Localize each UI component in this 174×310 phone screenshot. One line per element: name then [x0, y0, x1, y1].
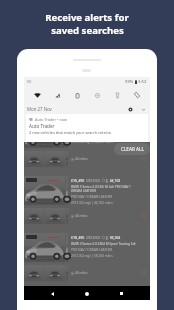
button[interactable]: Do not disturb: [90, 88, 104, 102]
button[interactable]: Save vehicle: [141, 213, 147, 219]
button[interactable]: Recent apps: [117, 289, 126, 298]
staticText: 2 new vehicles that match your search cr…: [29, 130, 112, 135]
staticText: PRO NAV / DREAM LEATHER: [71, 134, 113, 138]
staticText: (2012/62): [86, 236, 101, 240]
staticText: Mon 27 Nov: [27, 106, 52, 112]
staticText: CLEAR ALL: [121, 146, 144, 152]
button[interactable]: Settings: [126, 105, 134, 113]
staticText: £18,495: [71, 235, 85, 240]
staticText: 2012 (62 reg) | 58,204 miles: [71, 254, 113, 258]
staticText: EE: [27, 79, 32, 85]
staticText: BMW 3 Series 3.0 330d M Sport Touring 5d…: [71, 242, 136, 246]
staticText: 3:52: [138, 79, 147, 85]
button[interactable]: £12,995: [24, 290, 150, 300]
button[interactable]: Flashlight: [110, 88, 124, 102]
staticText: saved searches: [51, 24, 124, 37]
staticText: | 31,788: [106, 292, 121, 297]
staticText: 44 miles: [75, 214, 88, 218]
staticText: Auto Trader: [29, 123, 55, 129]
button[interactable]: Battery saver: [70, 88, 84, 102]
button[interactable]: £16,495: [24, 176, 150, 233]
button[interactable]: £18,495: [24, 233, 150, 290]
button[interactable]: Auto Trader • now: [26, 114, 148, 142]
staticText: 99%: [125, 79, 134, 85]
button[interactable]: Save vehicle: [141, 156, 147, 162]
staticText: (2012/62): [86, 293, 101, 297]
staticText: 2012 (62 reg) | 44,102 miles: [71, 201, 113, 205]
staticText: BMW 3 Series 2.0 320d SE 4dr: [71, 128, 116, 132]
staticText: | 58,204: [106, 235, 121, 240]
staticText: PRO NAV / DREAM LEATHER: [71, 248, 113, 252]
button[interactable]: £8,495: [24, 119, 150, 176]
button[interactable]: Back: [48, 289, 57, 298]
staticText: BMW 5 Series 3.0 535i SE 4dr PRO NAV / D…: [71, 185, 131, 193]
button[interactable]: Mobile data: [50, 88, 64, 102]
button[interactable]: CLEAR ALL: [114, 143, 150, 155]
button[interactable]: Auto rotate: [130, 88, 144, 102]
staticText: 2012 (62 reg) | 68,489 miles: [71, 140, 113, 144]
button[interactable]: Save vehicle: [141, 270, 147, 276]
staticText: Receive alerts for: [45, 11, 129, 24]
button[interactable]: Home: [82, 289, 91, 298]
staticText: PRO NAV / DREAM LEATHER: [71, 195, 113, 199]
staticText: £16,495: [71, 178, 85, 183]
button[interactable]: Expand: [139, 105, 147, 113]
staticText: 44 miles: [75, 157, 88, 161]
button[interactable]: Wi-Fi: [30, 88, 44, 102]
staticText: | 44,102: [106, 178, 121, 183]
staticText: Auto Trader • now: [35, 117, 67, 122]
staticText: 44 miles: [75, 271, 88, 275]
staticText: (2012/62): [86, 179, 101, 183]
